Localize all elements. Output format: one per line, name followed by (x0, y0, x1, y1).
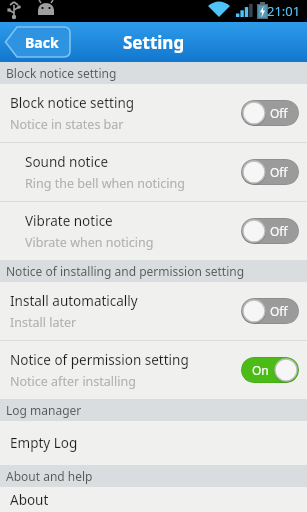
button[interactable]: Notice of permission setting (0, 341, 307, 399)
staticText: Off (270, 164, 288, 180)
button[interactable]: Back (4, 27, 70, 57)
button[interactable]: Toggle Off (241, 298, 299, 324)
button[interactable]: Toggle Off (241, 100, 299, 126)
button[interactable]: Sound notice (0, 143, 307, 201)
staticText: Install automatically (10, 292, 138, 310)
staticText: Off (270, 223, 288, 239)
staticText: Vibrate notice (25, 212, 113, 230)
staticText: About and help (6, 468, 93, 484)
staticText: Setting (123, 31, 185, 54)
button[interactable]: Install automatically (0, 282, 307, 340)
staticText: Sound notice (25, 153, 109, 171)
staticText: Vibrate when noticing (25, 234, 154, 251)
staticText: Notice after installing (10, 373, 136, 390)
staticText: Ring the bell when noticing (25, 175, 185, 192)
button[interactable]: Toggle Off (241, 159, 299, 185)
button[interactable]: Toggle Off (241, 218, 299, 244)
staticText: Block notice setting (6, 65, 117, 81)
staticText: Back (25, 33, 59, 52)
staticText: Notice in states bar (10, 116, 124, 133)
staticText: 21:01 (267, 2, 301, 20)
staticText: On (252, 362, 269, 378)
button[interactable]: Vibrate notice (0, 202, 307, 260)
button[interactable]: Toggle On (241, 357, 299, 383)
staticText: Off (270, 303, 288, 319)
staticText: Empty Log (10, 434, 78, 452)
staticText: Install later (10, 314, 77, 331)
button[interactable]: Empty Log (0, 421, 307, 465)
staticText: Notice of permission setting (10, 351, 189, 369)
button[interactable]: About (0, 487, 307, 512)
staticText: Block notice setting (10, 94, 135, 112)
button[interactable]: Block notice setting (0, 84, 307, 142)
staticText: Log manager (6, 402, 82, 418)
staticText: About (10, 491, 49, 509)
staticText: Notice of installing and permission sett… (6, 263, 245, 279)
staticText: Off (270, 105, 288, 121)
